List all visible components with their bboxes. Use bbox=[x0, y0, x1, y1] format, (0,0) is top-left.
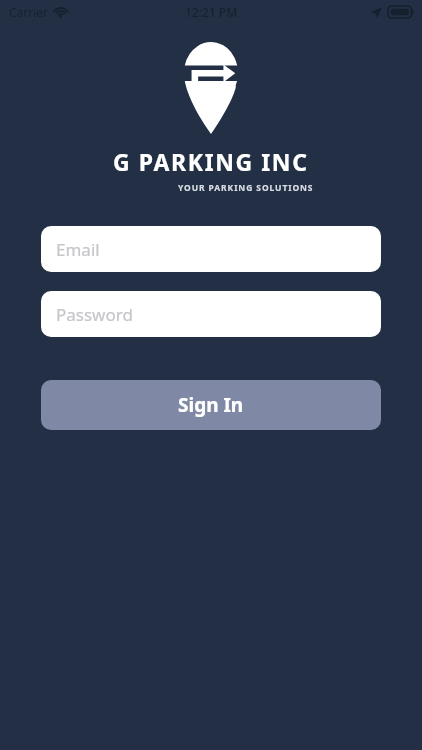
staticText: YOUR PARKING SOLUTIONS bbox=[178, 182, 314, 194]
staticText: Email bbox=[56, 238, 100, 261]
staticText: Carrier bbox=[9, 4, 49, 20]
button[interactable]: Email bbox=[41, 226, 381, 272]
button[interactable]: Sign In bbox=[41, 380, 381, 430]
staticText: 12:21 PM bbox=[185, 4, 238, 20]
staticText: Sign In bbox=[178, 392, 244, 418]
staticText: G PARKING INC bbox=[113, 146, 309, 177]
staticText: Password bbox=[56, 303, 133, 326]
button[interactable]: Password bbox=[41, 291, 381, 337]
